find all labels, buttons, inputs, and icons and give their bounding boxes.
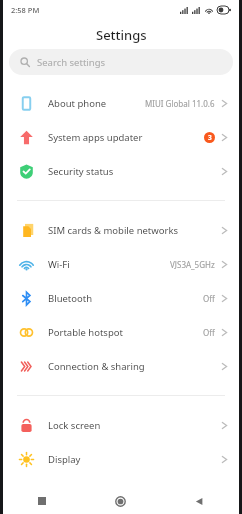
staticText: SIM cards & mobile networks — [48, 224, 179, 237]
button[interactable]: SIM cards & mobile networks — [3, 213, 239, 247]
button[interactable]: Bluetooth — [3, 281, 239, 315]
button[interactable]: Display — [3, 442, 239, 476]
staticText: Connection & sharing — [48, 360, 145, 373]
staticText: Security status — [48, 165, 114, 178]
staticText: Lock screen — [48, 419, 101, 432]
staticText: Off — [203, 327, 215, 338]
staticText: MIUI Global 11.0.6 — [145, 98, 215, 109]
button[interactable]: Wi-Fi — [3, 247, 239, 281]
staticText: Search settings — [37, 56, 106, 69]
button[interactable]: Connection & sharing — [3, 349, 239, 383]
staticText: Settings — [96, 26, 147, 44]
staticText: About phone — [48, 97, 107, 110]
staticText: Off — [203, 293, 215, 304]
button[interactable]: Recents — [3, 488, 81, 514]
button[interactable]: Search settings — [9, 49, 233, 75]
staticText: 2:58 PM — [11, 5, 40, 15]
button[interactable]: About phone — [3, 86, 239, 120]
staticText: Wi-Fi — [48, 258, 70, 271]
staticText: Bluetooth — [48, 292, 93, 305]
button[interactable]: Home — [81, 488, 160, 514]
staticText: System apps updater — [48, 131, 143, 144]
button[interactable]: Lock screen — [3, 408, 239, 442]
staticText: Display — [48, 453, 81, 466]
button[interactable]: Portable hotspot — [3, 315, 239, 349]
staticText: Portable hotspot — [48, 326, 123, 339]
button[interactable]: Security status — [3, 154, 239, 188]
button[interactable]: System apps updater — [3, 120, 239, 154]
staticText: 3 — [208, 133, 212, 142]
staticText: VJS3A_5GHz — [170, 259, 215, 270]
button[interactable]: Back — [160, 488, 239, 514]
